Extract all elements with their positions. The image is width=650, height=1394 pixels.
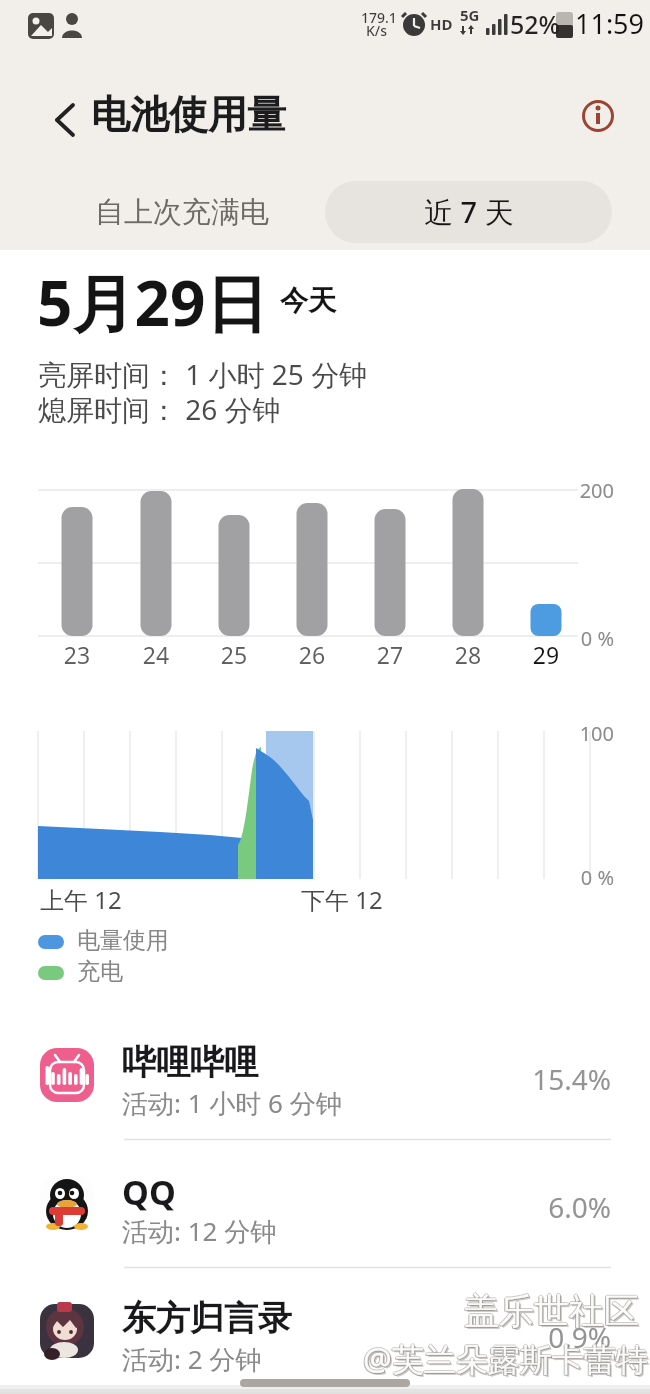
staticText: 100 — [314, 720, 614, 747]
staticText: 24 — [126, 639, 186, 670]
staticText: 充电 — [77, 957, 123, 986]
staticText: 52% — [510, 7, 560, 41]
staticText: 下午 12 — [301, 883, 383, 916]
staticText: 上午 12 — [40, 883, 122, 916]
staticText: @芙兰朵露斯卡蕾特 — [362, 1338, 647, 1382]
staticText: HD — [430, 14, 453, 34]
staticText: 盖乐世社区 — [463, 1289, 638, 1333]
staticText: 东方归言录 — [122, 1297, 292, 1340]
staticText: 盖乐世社区 — [464, 1289, 639, 1333]
staticText: 0 % — [314, 864, 614, 891]
staticText: 0 % — [314, 625, 614, 652]
staticText: 盖乐世社区 — [466, 1291, 641, 1335]
staticText: @芙兰朵露斯卡蕾特 — [364, 1338, 649, 1382]
staticText: 电量使用 — [77, 926, 169, 955]
button[interactable] — [0, 1140, 650, 1268]
staticText: 200 — [314, 477, 614, 504]
button[interactable] — [570, 89, 626, 145]
staticText: 近 7 天 — [424, 192, 514, 232]
staticText: 28 — [438, 639, 498, 670]
staticText: 29 — [516, 639, 576, 670]
staticText: 26 — [282, 639, 342, 670]
staticText: 亮屏时间： 1 小时 25 分钟 — [38, 355, 368, 393]
staticText: 盖乐世社区 — [464, 1290, 639, 1334]
staticText: 179.1 — [361, 8, 397, 27]
staticText: @芙兰朵露斯卡蕾特 — [362, 1337, 647, 1381]
staticText: QQ — [122, 1169, 176, 1215]
staticText: 自上次充满电 — [95, 194, 269, 231]
staticText: 电池使用量 — [91, 90, 286, 139]
button[interactable]: 近 7 天 — [325, 181, 612, 243]
staticText: K/s — [366, 21, 388, 40]
staticText: @芙兰朵露斯卡蕾特 — [363, 1336, 648, 1380]
button[interactable] — [0, 1032, 650, 1140]
staticText: 熄屏时间： 26 分钟 — [38, 390, 281, 428]
staticText: 27 — [360, 639, 420, 670]
staticText: 今天 — [280, 283, 336, 318]
staticText: 5G — [460, 5, 480, 25]
staticText: @芙兰朵露斯卡蕾特 — [363, 1338, 648, 1382]
staticText: 哔哩哔哩 — [122, 1041, 258, 1084]
staticText: 盖乐世社区 — [463, 1290, 638, 1334]
staticText: 活动: 12 分钟 — [122, 1213, 277, 1249]
button[interactable] — [0, 1268, 650, 1394]
staticText: 盖乐世社区 — [465, 1290, 640, 1334]
staticText: 6.0% — [311, 1188, 611, 1226]
staticText: 0.9% — [311, 1318, 611, 1356]
staticText: 11:59 — [575, 5, 645, 42]
staticText: @芙兰朵露斯卡蕾特 — [364, 1337, 649, 1381]
button[interactable] — [28, 92, 78, 142]
button[interactable]: 自上次充满电 — [38, 181, 325, 243]
staticText: 5月29日 — [37, 260, 268, 345]
staticText: 23 — [47, 639, 107, 670]
staticText: 25 — [204, 639, 264, 670]
staticText: 活动: 2 分钟 — [122, 1341, 262, 1377]
staticText: @芙兰朵露斯卡蕾特 — [363, 1337, 648, 1381]
staticText: 活动: 1 小时 6 分钟 — [122, 1085, 342, 1121]
staticText: 盖乐世社区 — [464, 1288, 639, 1332]
staticText: 15.4% — [311, 1060, 611, 1098]
staticText: 盖乐世社区 — [465, 1289, 640, 1333]
staticText: @芙兰朵露斯卡蕾特 — [365, 1339, 650, 1383]
